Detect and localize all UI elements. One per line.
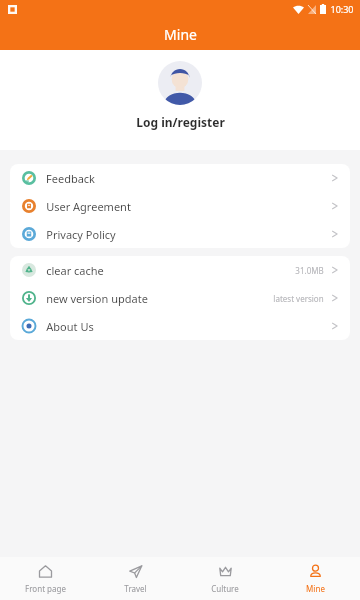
button[interactable]: clear cache	[10, 256, 350, 284]
staticText: Privacy Policy	[46, 227, 116, 242]
staticText: new version update	[46, 291, 148, 306]
other: Culture	[218, 564, 233, 579]
staticText: Log in/register	[136, 114, 225, 130]
staticText: About Us	[46, 319, 94, 334]
button[interactable]: Mine	[270, 557, 360, 600]
button[interactable]: About Us	[10, 312, 350, 340]
button[interactable]: Culture	[180, 557, 270, 600]
button[interactable]: User Agreement	[10, 192, 350, 220]
staticText: clear cache	[46, 263, 104, 278]
staticText: User Agreement	[46, 199, 131, 214]
staticText: Travel	[124, 583, 147, 594]
staticText: latest version	[273, 293, 324, 304]
other: Front page	[38, 564, 53, 579]
staticText: Culture	[211, 583, 239, 594]
button[interactable]: Privacy Policy	[10, 220, 350, 248]
button[interactable]: Feedback	[10, 164, 350, 192]
button[interactable]: new version update	[10, 284, 350, 312]
button[interactable]: Travel	[90, 557, 180, 600]
staticText: 10:30	[330, 3, 354, 15]
staticText: 31.0MB	[295, 265, 324, 276]
staticText: Mine	[306, 583, 325, 594]
staticText: Feedback	[46, 171, 95, 186]
staticText: Mine	[164, 25, 197, 44]
staticText: Front page	[25, 583, 66, 594]
button[interactable]: Front page	[0, 557, 90, 600]
button[interactable]: Log in/register	[0, 50, 360, 150]
other: Travel	[128, 564, 143, 579]
other: Mine	[308, 564, 323, 579]
